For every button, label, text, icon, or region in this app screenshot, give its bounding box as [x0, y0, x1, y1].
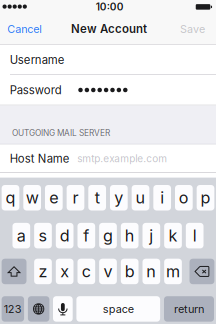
- staticText: 10:00: [96, 1, 124, 13]
- button[interactable]: Password: [0, 75, 216, 105]
- button[interactable]: m: [164, 259, 182, 284]
- button[interactable]: Shift: [2, 259, 26, 284]
- staticText: u: [135, 188, 145, 207]
- button[interactable]: h: [121, 223, 138, 248]
- staticText: b: [125, 262, 135, 281]
- staticText: d: [60, 226, 70, 245]
- staticText: Password: [10, 83, 62, 97]
- button[interactable]: t: [88, 185, 106, 210]
- staticText: i: [160, 188, 164, 207]
- staticText: Save: [180, 22, 205, 36]
- staticText: x: [60, 262, 69, 281]
- button[interactable]: Username: [0, 45, 216, 74]
- staticText: o: [179, 188, 189, 207]
- staticText: Host Name: [10, 152, 70, 165]
- staticText: r: [72, 188, 78, 207]
- staticText: v: [103, 262, 112, 281]
- staticText: n: [146, 262, 156, 281]
- button[interactable]: e: [45, 185, 63, 210]
- button[interactable]: c: [77, 259, 95, 284]
- staticText: e: [49, 188, 58, 207]
- staticText: f: [83, 226, 89, 245]
- staticText: l: [193, 226, 197, 245]
- button[interactable]: Save: [173, 14, 211, 43]
- button[interactable]: b: [121, 259, 138, 284]
- button[interactable]: k: [164, 223, 182, 248]
- staticText: g: [103, 226, 113, 245]
- staticText: c: [82, 262, 91, 281]
- button[interactable]: Next keyboard: [28, 296, 49, 322]
- staticText: t: [95, 188, 100, 207]
- button[interactable]: l: [186, 223, 203, 248]
- button[interactable]: p: [197, 185, 214, 210]
- staticText: p: [200, 188, 210, 207]
- staticText: New Account: [71, 22, 147, 36]
- button[interactable]: s: [34, 223, 52, 248]
- staticText: OUTGOING MAIL SERVER: [12, 128, 110, 138]
- button[interactable]: Delete: [189, 259, 214, 284]
- button[interactable]: u: [132, 185, 149, 210]
- staticText: s: [38, 226, 47, 245]
- staticText: k: [168, 226, 177, 245]
- button[interactable]: a: [12, 223, 30, 248]
- button[interactable]: n: [142, 259, 160, 284]
- staticText: y: [114, 188, 123, 207]
- button[interactable]: Dictation: [53, 296, 73, 322]
- staticText: h: [125, 226, 135, 245]
- button[interactable]: o: [175, 185, 193, 210]
- staticText: q: [5, 188, 15, 207]
- button[interactable]: j: [142, 223, 160, 248]
- button[interactable]: f: [77, 223, 95, 248]
- staticText: Username: [10, 53, 65, 67]
- button[interactable]: Host Name: [0, 144, 216, 172]
- staticText: z: [38, 262, 47, 281]
- button[interactable]: Numbers: [2, 296, 24, 322]
- button[interactable]: v: [99, 259, 117, 284]
- staticText: w: [26, 188, 39, 207]
- button[interactable]: w: [23, 185, 41, 210]
- staticText: m: [166, 262, 180, 281]
- button[interactable]: g: [99, 223, 117, 248]
- staticText: return: [174, 302, 204, 315]
- staticText: j: [149, 226, 153, 245]
- staticText: 123: [4, 302, 22, 315]
- button[interactable]: i: [153, 185, 171, 210]
- button[interactable]: q: [2, 185, 19, 210]
- button[interactable]: y: [110, 185, 128, 210]
- staticText: Cancel: [7, 22, 42, 36]
- button[interactable]: return: [164, 296, 214, 322]
- button[interactable]: Cancel: [1, 14, 47, 43]
- staticText: space: [103, 302, 134, 315]
- button[interactable]: d: [56, 223, 73, 248]
- button[interactable]: space: [76, 296, 160, 322]
- staticText: smtp.example.com: [77, 153, 167, 165]
- staticText: a: [17, 226, 26, 245]
- button[interactable]: r: [67, 185, 84, 210]
- button[interactable]: z: [34, 259, 52, 284]
- button[interactable]: x: [56, 259, 73, 284]
